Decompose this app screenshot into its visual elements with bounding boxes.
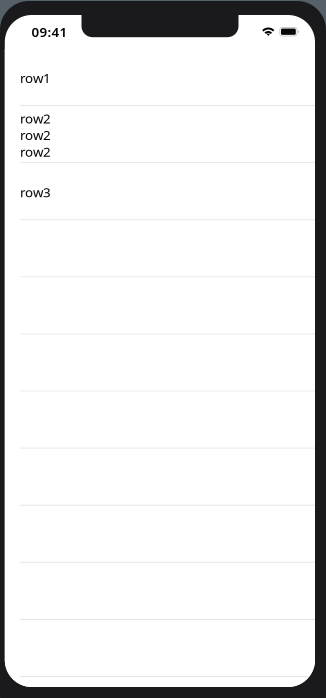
button[interactable] (5, 620, 315, 677)
button[interactable] (5, 563, 315, 620)
button[interactable]: row3 (5, 163, 315, 220)
staticText: row2 (20, 110, 51, 127)
button[interactable]: row2 (5, 106, 315, 163)
button[interactable] (5, 677, 315, 698)
staticText: row1 (20, 69, 51, 87)
button[interactable]: row1 (5, 49, 315, 106)
staticText: row3 (20, 183, 51, 201)
staticText: row2 (20, 143, 51, 160)
staticText: row2 (20, 126, 51, 144)
staticText: 09:41 (32, 23, 68, 41)
